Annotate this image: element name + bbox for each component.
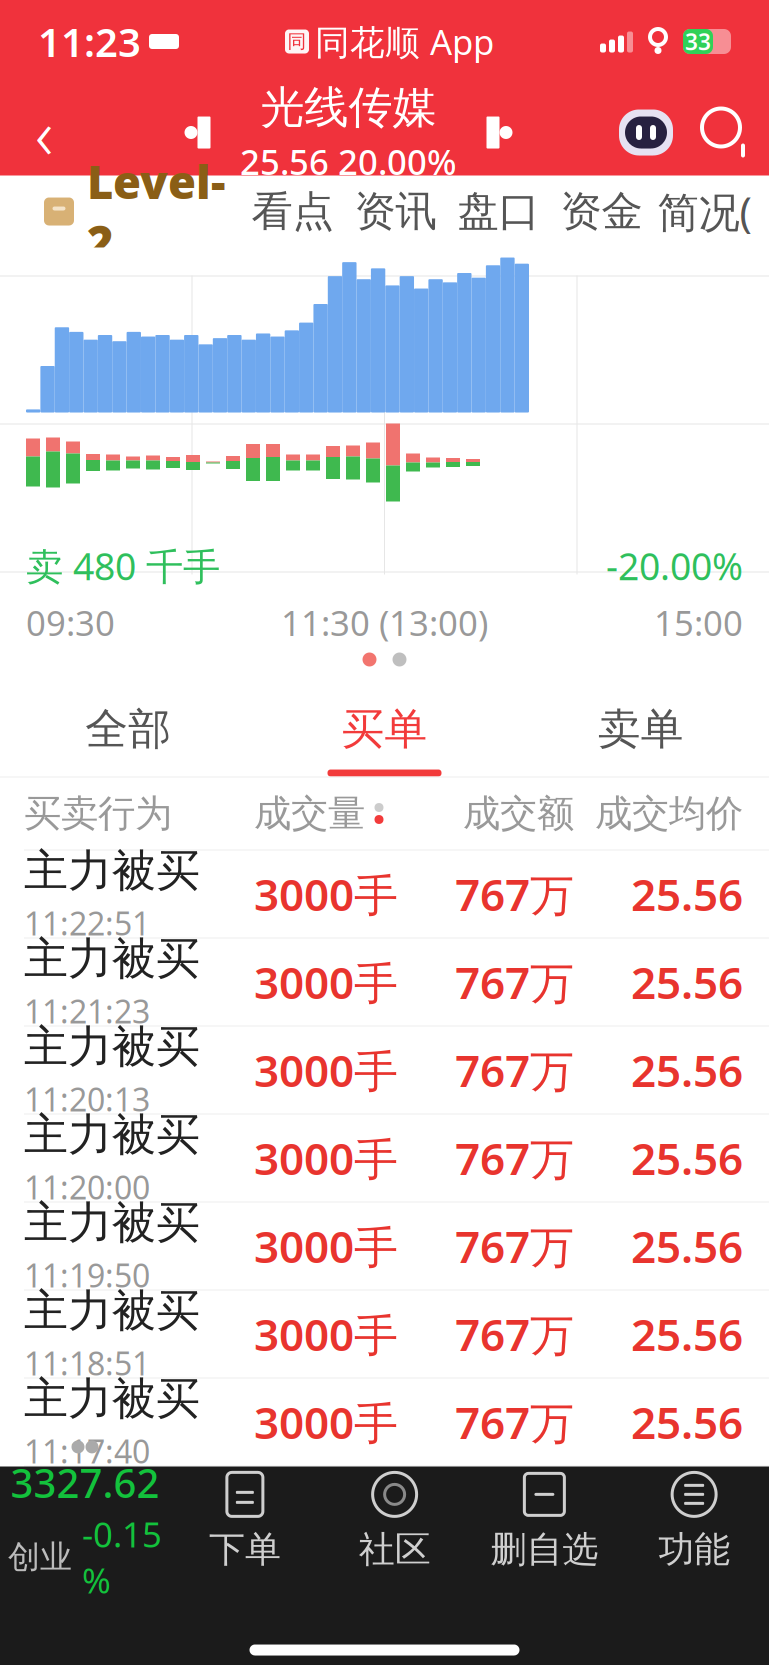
staticText: 买卖行为 bbox=[24, 791, 172, 836]
staticText: 11:21:23 bbox=[24, 990, 150, 1032]
staticText: 11:22:51 bbox=[24, 902, 150, 944]
staticText: 主力被买 bbox=[24, 1108, 200, 1162]
staticText: 767万 bbox=[455, 1129, 574, 1187]
staticText: 767万 bbox=[455, 865, 574, 923]
staticText: 15:00 bbox=[654, 599, 743, 645]
staticText: 主力被买 bbox=[24, 844, 200, 898]
staticText: 25.56 bbox=[631, 1217, 743, 1275]
staticText: 11:23 bbox=[38, 15, 141, 68]
staticText: 09:30 bbox=[26, 599, 115, 645]
staticText: 创业 bbox=[8, 1537, 72, 1577]
staticText: 卖单 bbox=[598, 703, 684, 755]
staticText: 3000手 bbox=[254, 1041, 398, 1099]
staticText: 主力被买 bbox=[24, 1284, 200, 1338]
button[interactable]: 主力被买 bbox=[0, 1202, 769, 1290]
staticText: 简况( bbox=[657, 184, 751, 239]
staticText: 看点 bbox=[251, 186, 333, 237]
button[interactable]: 看点 bbox=[241, 175, 344, 247]
button[interactable]: 简况( bbox=[653, 175, 756, 247]
button[interactable]: 盘口 bbox=[447, 175, 550, 247]
staticText: Level-2 bbox=[87, 151, 225, 272]
staticText: 3000手 bbox=[254, 953, 398, 1011]
staticText: 767万 bbox=[455, 953, 574, 1011]
staticText: 删自选 bbox=[490, 1527, 598, 1572]
button[interactable]: 主力被买 bbox=[0, 850, 769, 938]
button[interactable]: Level-2 bbox=[13, 175, 241, 247]
staticText: 同花顺 App bbox=[315, 18, 494, 64]
staticText: 主力被买 bbox=[24, 1020, 200, 1074]
button[interactable]: 主力被买 bbox=[0, 938, 769, 1026]
staticText: 3000手 bbox=[254, 865, 398, 923]
staticText: 光线传媒 bbox=[260, 80, 436, 134]
button[interactable]: 返回 bbox=[0, 90, 88, 174]
staticText: 11:18:51 bbox=[24, 1342, 150, 1384]
staticText: 11:20:13 bbox=[24, 1078, 150, 1120]
button[interactable]: 下一只股票 bbox=[473, 90, 525, 174]
staticText: 33 bbox=[685, 26, 711, 56]
button[interactable]: 主力被买 bbox=[0, 1114, 769, 1202]
button[interactable]: 主力被买 bbox=[0, 1026, 769, 1114]
staticText: 主力被买 bbox=[24, 932, 200, 986]
staticText: 资讯 bbox=[354, 186, 436, 237]
button[interactable]: 卖单 bbox=[513, 676, 769, 776]
staticText: 社区 bbox=[359, 1527, 431, 1572]
button[interactable]: 主力被买 bbox=[0, 1290, 769, 1378]
button[interactable]: 下单 bbox=[170, 1469, 320, 1573]
button[interactable]: 全部 bbox=[0, 676, 256, 776]
staticText: 下单 bbox=[209, 1527, 281, 1572]
staticText: 767万 bbox=[455, 1393, 574, 1451]
staticText: 11:17:40 bbox=[24, 1430, 150, 1472]
button[interactable]: 资金 bbox=[550, 175, 653, 247]
button[interactable]: 功能 bbox=[619, 1469, 769, 1573]
staticText: 3000手 bbox=[254, 1305, 398, 1363]
button[interactable]: 买单 bbox=[256, 676, 513, 776]
staticText: 卖 480 千手 bbox=[26, 541, 220, 590]
staticText: 767万 bbox=[455, 1041, 574, 1099]
button[interactable]: 上一只股票 bbox=[171, 90, 223, 174]
staticText: 25.56 bbox=[631, 953, 743, 1011]
button[interactable]: 搜索 bbox=[683, 90, 769, 174]
staticText: 主力被买 bbox=[24, 1196, 200, 1250]
staticText: 3000手 bbox=[254, 1129, 398, 1187]
staticText: 11:19:50 bbox=[24, 1254, 150, 1296]
staticText: 25.56 20.00% bbox=[240, 138, 457, 184]
button[interactable]: 资讯 bbox=[344, 175, 447, 247]
staticText: 25.56 bbox=[631, 1129, 743, 1187]
button[interactable]: 删自选 bbox=[469, 1469, 619, 1573]
staticText: 3000手 bbox=[254, 1393, 398, 1451]
staticText: 成交均价 bbox=[595, 791, 743, 836]
staticText: 25.56 bbox=[631, 865, 743, 923]
staticText: 买单 bbox=[341, 703, 427, 755]
staticText: 25.56 bbox=[631, 1041, 743, 1099]
staticText: 3327.62 bbox=[10, 1456, 159, 1509]
staticText: 3000手 bbox=[254, 1217, 398, 1275]
button[interactable]: 智能助手 bbox=[609, 90, 683, 174]
staticText: 全部 bbox=[85, 703, 171, 755]
staticText: 资金 bbox=[560, 186, 642, 237]
staticText: 11:30 (13:00) bbox=[281, 599, 488, 645]
staticText: 25.56 bbox=[631, 1393, 743, 1451]
staticText: 767万 bbox=[455, 1217, 574, 1275]
staticText: -0.15% bbox=[82, 1511, 162, 1603]
staticText: 功能 bbox=[658, 1527, 730, 1572]
staticText: 767万 bbox=[455, 1305, 574, 1363]
staticText: 同 bbox=[287, 30, 306, 53]
staticText: 11:20:00 bbox=[24, 1166, 150, 1208]
staticText: 25.56 bbox=[631, 1305, 743, 1363]
staticText: 成交量 bbox=[254, 791, 365, 836]
staticText: -20.00% bbox=[606, 541, 743, 590]
staticText: 成交额 bbox=[463, 791, 574, 836]
button[interactable]: 主力被买 bbox=[0, 1378, 769, 1466]
staticText: 盘口 bbox=[457, 186, 539, 237]
button[interactable]: 社区 bbox=[320, 1469, 470, 1573]
staticText: 主力被买 bbox=[24, 1372, 200, 1426]
button[interactable]: 3327.62 bbox=[0, 1469, 170, 1573]
staticText: ‹ bbox=[35, 86, 53, 179]
